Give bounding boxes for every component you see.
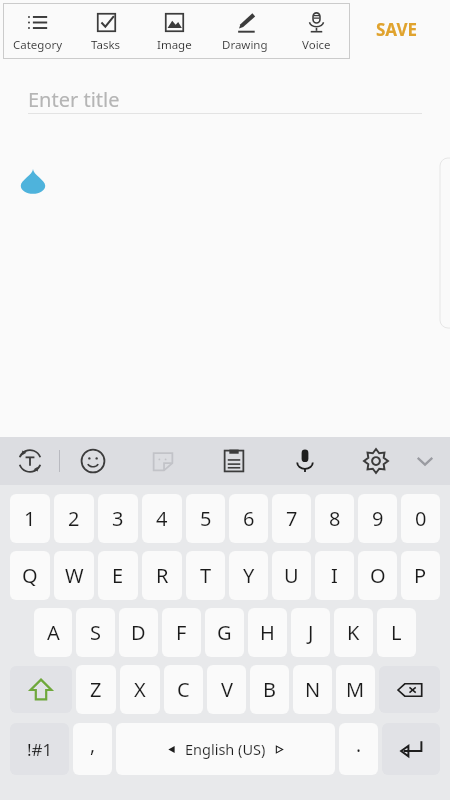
staticText: E xyxy=(112,562,124,589)
button[interactable]: Shift xyxy=(10,666,72,713)
button[interactable]: Category xyxy=(3,3,72,59)
button[interactable]: J xyxy=(291,608,330,657)
staticText: Tasks xyxy=(91,37,121,53)
button[interactable]: F xyxy=(162,608,201,657)
staticText: SAVE xyxy=(376,18,418,41)
button[interactable]: 0 xyxy=(401,494,440,543)
staticText: 5 xyxy=(200,505,212,532)
button[interactable]: !#1 xyxy=(10,723,69,775)
staticText: O xyxy=(370,562,386,589)
button[interactable]: M xyxy=(336,665,375,714)
staticText: H xyxy=(260,619,275,646)
button[interactable]: Backspace xyxy=(379,666,440,713)
button[interactable]: . xyxy=(339,723,378,775)
staticText: X xyxy=(134,676,146,703)
staticText: P xyxy=(414,562,427,589)
staticText: 8 xyxy=(329,505,341,532)
staticText: Enter title xyxy=(28,86,120,113)
staticText: Z xyxy=(90,676,102,703)
button[interactable]: N xyxy=(293,665,332,714)
staticText: U xyxy=(284,562,299,589)
staticText: K xyxy=(347,619,360,646)
button[interactable]: Q xyxy=(10,551,50,600)
button[interactable]: Translate xyxy=(8,439,52,483)
staticText: 1 xyxy=(24,505,36,532)
button[interactable]: Hide keyboard xyxy=(403,439,447,483)
button[interactable]: Voice xyxy=(282,3,350,59)
staticText: 9 xyxy=(372,505,384,532)
staticText: 0 xyxy=(415,505,427,532)
button[interactable]: C xyxy=(164,665,203,714)
staticText: Drawing xyxy=(222,37,268,53)
button[interactable]: D xyxy=(119,608,158,657)
button[interactable]: T xyxy=(186,551,225,600)
button[interactable]: B xyxy=(250,665,289,714)
button[interactable]: Voice input xyxy=(283,439,327,483)
staticText: Voice xyxy=(302,37,331,53)
staticText: Image xyxy=(157,37,192,53)
button[interactable]: E xyxy=(98,551,138,600)
button[interactable]: Drawing xyxy=(208,3,282,59)
button[interactable]: Enter xyxy=(382,723,440,775)
button[interactable]: O xyxy=(358,551,397,600)
staticText: I xyxy=(331,562,338,589)
button[interactable]: A xyxy=(34,608,72,657)
staticText: 6 xyxy=(243,505,255,532)
button[interactable]: Image xyxy=(140,3,208,59)
button[interactable]: G xyxy=(205,608,244,657)
button[interactable]: SAVE xyxy=(372,12,422,47)
staticText: 3 xyxy=(112,505,124,532)
staticText: V xyxy=(221,676,233,703)
button[interactable]: 9 xyxy=(358,494,397,543)
staticText: 7 xyxy=(286,505,298,532)
button[interactable]: Z xyxy=(76,665,116,714)
button[interactable]: I xyxy=(315,551,354,600)
staticText: , xyxy=(90,732,96,758)
button[interactable]: L xyxy=(377,608,416,657)
staticText: L xyxy=(391,619,402,646)
button[interactable]: 5 xyxy=(186,494,225,543)
staticText: !#1 xyxy=(27,738,53,761)
button[interactable]: 1 xyxy=(10,494,50,543)
button[interactable]: X xyxy=(120,665,160,714)
staticText: D xyxy=(131,619,146,646)
button[interactable]: K xyxy=(334,608,373,657)
button[interactable]: 2 xyxy=(54,494,94,543)
button[interactable]: Settings xyxy=(354,439,398,483)
button[interactable]: V xyxy=(207,665,246,714)
staticText: M xyxy=(346,676,365,703)
button[interactable]: W xyxy=(54,551,94,600)
staticText: C xyxy=(177,676,190,703)
button[interactable]: P xyxy=(401,551,440,600)
button[interactable]: English (US) xyxy=(116,723,335,775)
button[interactable]: 8 xyxy=(315,494,354,543)
button[interactable]: Clipboard xyxy=(212,439,256,483)
button[interactable]: , xyxy=(73,723,112,775)
staticText: Q xyxy=(22,562,38,589)
button[interactable]: 4 xyxy=(142,494,182,543)
staticText: N xyxy=(305,676,321,703)
button[interactable]: H xyxy=(248,608,287,657)
staticText: B xyxy=(263,676,276,703)
button[interactable]: 6 xyxy=(229,494,268,543)
button[interactable]: S xyxy=(76,608,115,657)
button[interactable]: 3 xyxy=(98,494,138,543)
button[interactable]: Y xyxy=(229,551,268,600)
button[interactable]: 7 xyxy=(272,494,311,543)
button[interactable]: Emoji xyxy=(71,439,115,483)
staticText: Category xyxy=(13,37,63,53)
button[interactable]: U xyxy=(272,551,311,600)
staticText: J xyxy=(308,619,314,646)
staticText: G xyxy=(217,619,232,646)
button[interactable]: Tasks xyxy=(72,3,140,59)
staticText: W xyxy=(65,562,84,589)
button[interactable]: Stickers xyxy=(141,439,185,483)
staticText: 2 xyxy=(68,505,80,532)
button[interactable]: R xyxy=(142,551,182,600)
staticText: R xyxy=(156,562,169,589)
staticText: Y xyxy=(243,562,255,589)
staticText: 4 xyxy=(156,505,168,532)
staticText: English (US) xyxy=(185,739,266,759)
staticText: F xyxy=(176,619,187,646)
staticText: . xyxy=(356,732,362,758)
